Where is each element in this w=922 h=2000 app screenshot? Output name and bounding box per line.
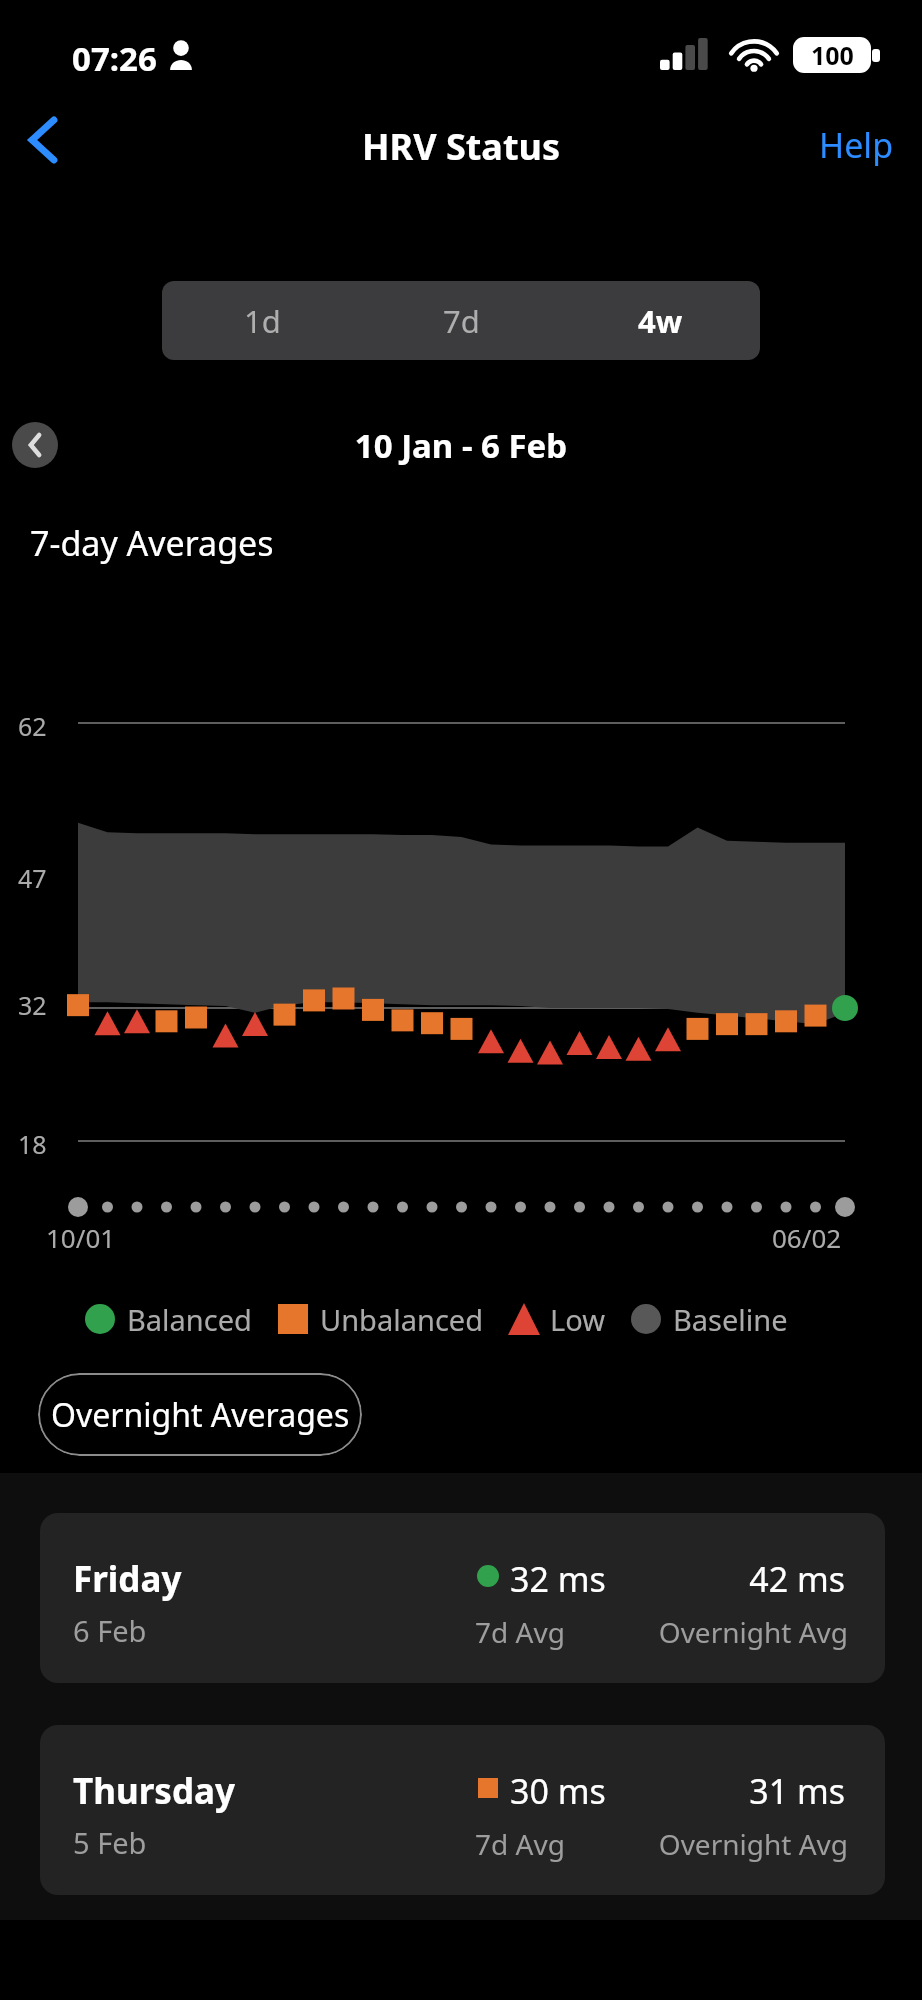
staticText: 62: [18, 709, 47, 743]
button[interactable]: Overnight Averages: [38, 1373, 362, 1456]
button[interactable]: 7d: [362, 281, 561, 360]
staticText: 7d Avg: [475, 1825, 565, 1863]
staticText: Unbalanced: [320, 1300, 484, 1339]
staticText: Balanced: [127, 1300, 252, 1339]
staticText: 18: [18, 1127, 47, 1161]
staticText: Thursday: [73, 1767, 235, 1815]
staticText: 10/01: [46, 1220, 116, 1255]
staticText: Overnight Averages: [51, 1393, 350, 1437]
button[interactable]: Help: [807, 110, 906, 180]
staticText: HRV Status: [0, 122, 922, 171]
staticText: 1d: [244, 300, 281, 342]
staticText: 7d: [443, 300, 480, 342]
staticText: Help: [819, 122, 894, 168]
button[interactable]: 4w: [561, 281, 760, 360]
staticText: 6 Feb: [73, 1611, 147, 1650]
staticText: 42 ms: [40, 1556, 845, 1602]
staticText: 4w: [638, 300, 683, 342]
staticText: 30 ms: [510, 1768, 606, 1814]
button[interactable]: Previous period: [12, 422, 58, 468]
button[interactable]: Thursday: [40, 1725, 885, 1895]
staticText: Overnight Avg: [40, 1825, 848, 1863]
staticText: 32: [18, 988, 47, 1022]
staticText: Low: [550, 1300, 605, 1339]
staticText: 31 ms: [40, 1768, 845, 1814]
button[interactable]: Back: [8, 105, 78, 175]
staticText: Baseline: [673, 1300, 788, 1339]
staticText: 10 Jan - 6 Feb: [0, 423, 922, 468]
staticText: 06/02: [772, 1220, 842, 1255]
staticText: Friday: [73, 1555, 182, 1603]
button[interactable]: 1d: [162, 281, 362, 360]
staticText: 5 Feb: [73, 1823, 147, 1862]
staticText: 7-day Averages: [30, 520, 274, 566]
staticText: 07:26: [72, 36, 157, 81]
staticText: 32 ms: [510, 1556, 606, 1602]
button[interactable]: Friday: [40, 1513, 885, 1683]
staticText: Overnight Avg: [40, 1613, 848, 1651]
staticText: 100: [811, 38, 854, 72]
staticText: 7d Avg: [475, 1613, 565, 1651]
staticText: 47: [18, 861, 47, 895]
